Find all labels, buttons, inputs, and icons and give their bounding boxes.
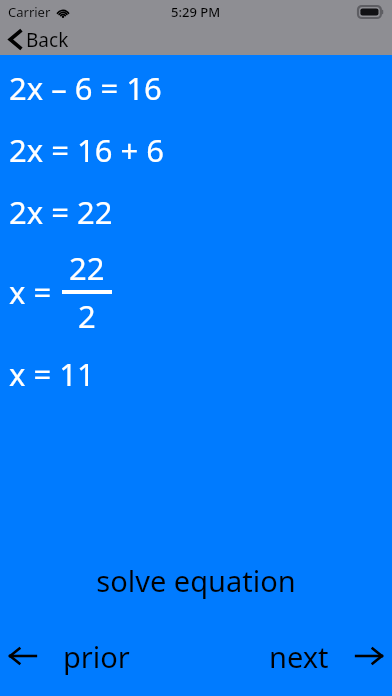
staticText: 22 xyxy=(69,247,105,289)
staticText: prior xyxy=(63,637,130,676)
button[interactable]: next xyxy=(196,630,392,682)
button[interactable]: solve equation xyxy=(0,557,392,604)
staticText: Back xyxy=(26,27,69,53)
staticText: solve equation xyxy=(96,561,296,600)
staticText: 2x – 6 = 16 xyxy=(9,67,162,109)
other: prior xyxy=(9,645,37,667)
button[interactable]: Back xyxy=(0,24,81,55)
staticText: Carrier xyxy=(8,3,51,21)
staticText: 5:29 PM xyxy=(171,3,221,21)
staticText: 2x = 16 + 6 xyxy=(9,129,165,171)
button[interactable]: prior xyxy=(0,630,196,682)
staticText: x = xyxy=(9,271,52,313)
staticText: next xyxy=(269,637,329,676)
staticText: 2 xyxy=(78,295,96,337)
other: next xyxy=(355,645,383,667)
staticText: x = 11 xyxy=(9,353,95,395)
staticText: 2x = 22 xyxy=(9,191,113,233)
